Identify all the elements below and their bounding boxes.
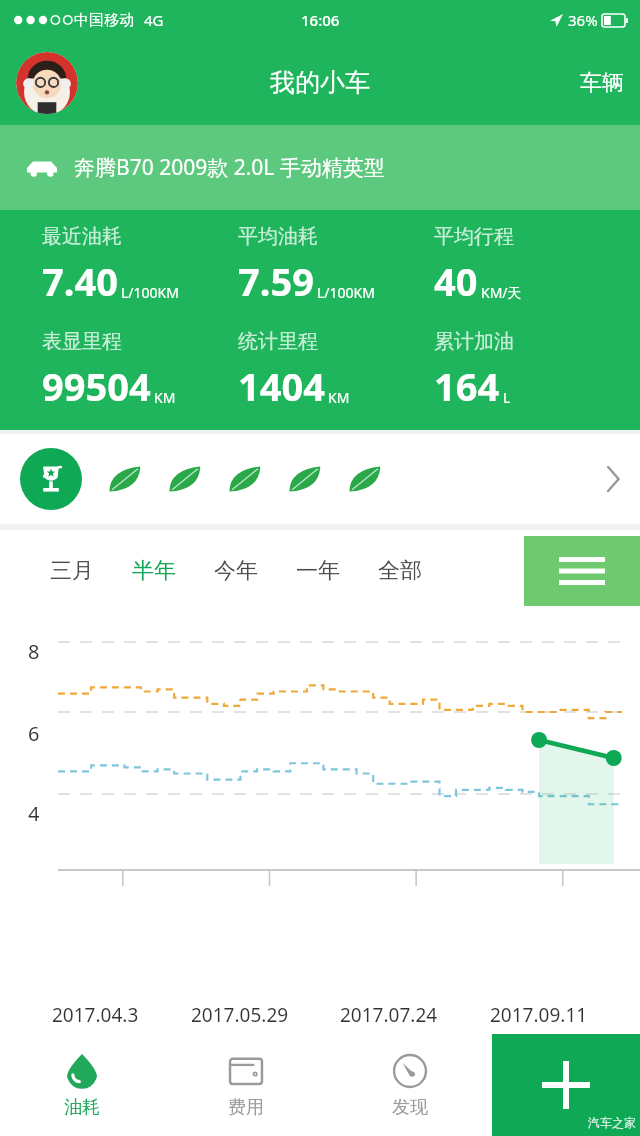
staticText: 我的小车 — [270, 67, 370, 98]
button[interactable] — [0, 434, 640, 524]
staticText: 统计里程 — [238, 329, 318, 354]
staticText: 最近油耗 — [42, 224, 122, 249]
staticText: L — [503, 388, 511, 407]
staticText: 今年 — [214, 557, 258, 585]
button[interactable]: 油耗 — [0, 1034, 164, 1136]
staticText: 汽车之家 — [588, 1115, 636, 1130]
staticText: 7.40 — [42, 255, 118, 307]
staticText: KM/天 — [481, 283, 522, 302]
staticText: 7.59 — [238, 255, 314, 307]
staticText: 1404 — [238, 360, 325, 412]
button[interactable]: 奔腾B70 2009款 2.0L 手动精英型 — [0, 125, 640, 210]
staticText: KM — [154, 388, 176, 407]
button[interactable]: Profile — [16, 52, 78, 114]
staticText: 累计加油 — [434, 329, 514, 354]
staticText: 36% — [568, 10, 598, 30]
staticText: 费用 — [228, 1096, 264, 1119]
staticText: 4G — [144, 10, 164, 30]
button[interactable]: 今年 — [200, 545, 272, 597]
button[interactable]: Menu — [524, 536, 640, 606]
button[interactable]: 全部 — [364, 545, 436, 597]
staticText: L/100KM — [121, 283, 179, 302]
staticText: 2017.09.11 — [490, 1002, 588, 1028]
staticText: 16:06 — [301, 10, 340, 30]
staticText: 平均行程 — [434, 224, 514, 249]
staticText: KM — [328, 388, 350, 407]
staticText: 奔腾B70 2009款 2.0L 手动精英型 — [74, 153, 385, 182]
button[interactable]: 半年 — [118, 545, 190, 597]
staticText: 油耗 — [64, 1096, 100, 1119]
staticText: 一年 — [296, 557, 340, 585]
button[interactable]: 一年 — [282, 545, 354, 597]
staticText: 4 — [28, 800, 40, 827]
staticText: 三月 — [50, 557, 94, 585]
button[interactable]: 三月 — [36, 545, 108, 597]
staticText: 2017.07.24 — [340, 1002, 438, 1028]
staticText: 发现 — [392, 1096, 428, 1119]
staticText: 6 — [28, 720, 40, 747]
button[interactable]: 车辆 — [564, 59, 640, 107]
staticText: 中国移动 — [74, 11, 134, 30]
staticText: 99504 — [42, 360, 151, 412]
staticText: 40 — [434, 255, 478, 307]
staticText: 2017.05.29 — [191, 1002, 289, 1028]
staticText: 半年 — [132, 557, 176, 585]
staticText: 车辆 — [580, 69, 624, 97]
staticText: 平均油耗 — [238, 224, 318, 249]
staticText: 2017.04.3 — [52, 1002, 139, 1028]
staticText: 8 — [28, 638, 40, 665]
staticText: 164 — [434, 360, 500, 412]
staticText: 表显里程 — [42, 329, 122, 354]
button[interactable]: 费用 — [164, 1034, 328, 1136]
staticText: 全部 — [378, 557, 422, 585]
button[interactable]: 发现 — [328, 1034, 492, 1136]
button[interactable]: Add — [492, 1034, 640, 1136]
staticText: L/100KM — [317, 283, 375, 302]
